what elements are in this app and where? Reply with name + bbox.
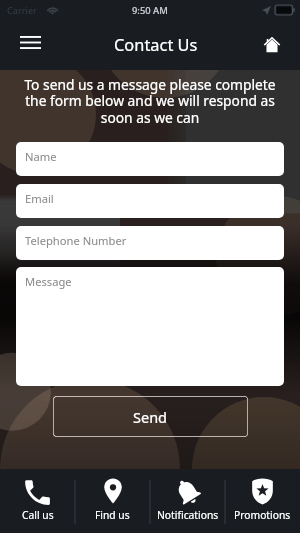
staticText: Name — [25, 149, 57, 164]
staticText: Find us — [95, 508, 130, 522]
button[interactable]: Call us — [0, 469, 75, 533]
button[interactable]: Name — [16, 142, 284, 176]
button[interactable]: Menu — [12, 24, 48, 60]
staticText: Telephone Number — [25, 233, 127, 248]
button[interactable]: Home — [256, 29, 288, 61]
staticText: Promotions — [234, 508, 291, 522]
staticText: Email — [25, 191, 54, 206]
staticText: 9:50 AM — [132, 4, 168, 17]
button[interactable]: Promotions — [225, 469, 300, 533]
staticText: Contact Us — [114, 33, 198, 55]
button[interactable]: Notifications — [150, 469, 225, 533]
button[interactable]: Email — [16, 184, 284, 218]
staticText: To send us a message please complete the… — [24, 75, 276, 127]
staticText: Notifications — [157, 508, 219, 522]
staticText: Carrier — [7, 4, 37, 17]
staticText: Call us — [22, 508, 54, 522]
button[interactable]: Telephone Number — [16, 226, 284, 260]
staticText: Send — [133, 407, 168, 427]
button[interactable]: Find us — [75, 469, 150, 533]
staticText: Message — [25, 274, 72, 289]
button[interactable]: Send — [53, 396, 248, 437]
button[interactable]: Message — [16, 267, 284, 386]
